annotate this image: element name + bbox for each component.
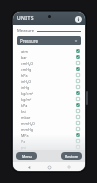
button[interactable]: atm [13, 48, 85, 54]
button[interactable]: inHg [13, 84, 85, 90]
staticText: mmH₂O [21, 121, 35, 126]
staticText: ksi [21, 109, 26, 114]
staticText: psi [21, 145, 26, 150]
button[interactable]: Menu [16, 152, 37, 160]
staticText: mbar [21, 115, 31, 120]
button[interactable]: MPa [13, 132, 85, 138]
staticText: inHg [21, 85, 30, 90]
button[interactable]: mbar [13, 114, 85, 120]
button[interactable]: inH₂O [13, 78, 85, 84]
button[interactable]: psi [13, 144, 85, 150]
button[interactable]: Info [74, 15, 82, 23]
staticText: MPa [21, 133, 29, 138]
button[interactable]: mmH₂O [13, 120, 85, 126]
staticText: kg/cm² [21, 91, 34, 96]
button[interactable]: hPa [13, 72, 85, 78]
button[interactable]: Pa [13, 138, 85, 144]
button[interactable]: bar [13, 54, 85, 60]
staticText: atm [21, 49, 28, 54]
button[interactable]: Recent apps [65, 163, 73, 171]
button[interactable]: mmHg [13, 126, 85, 132]
staticText: Measure [17, 28, 35, 34]
button[interactable]: cmH₂O [13, 60, 85, 66]
button[interactable]: kg/m² [13, 96, 85, 102]
button[interactable]: Home [45, 163, 53, 171]
staticText: cmH₂O [21, 61, 34, 66]
staticText: Pressure [20, 38, 74, 44]
button[interactable]: ksi [13, 108, 85, 114]
staticText: kPa [21, 103, 28, 108]
staticText: hPa [21, 73, 28, 78]
button[interactable]: Pressure [17, 36, 81, 45]
button[interactable]: cmHg [13, 66, 85, 72]
staticText: mmHg [21, 127, 33, 132]
staticText: inH₂O [21, 79, 32, 84]
button[interactable]: Back [25, 163, 33, 171]
button[interactable]: kPa [13, 102, 85, 108]
staticText: kg/m² [21, 97, 32, 102]
staticText: UNITS [17, 15, 34, 22]
button[interactable]: Restore [61, 152, 82, 160]
button[interactable]: kg/cm² [13, 90, 85, 96]
staticText: cmHg [21, 67, 32, 72]
staticText: Pa [21, 139, 26, 144]
staticText: Restore [65, 154, 79, 159]
staticText: Menu [22, 154, 32, 159]
staticText: bar [21, 55, 27, 60]
